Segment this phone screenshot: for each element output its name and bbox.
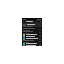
button[interactable] [22,40,42,43]
button[interactable] [22,38,42,40]
button[interactable]: Menu [22,20,42,23]
button[interactable] [22,31,42,34]
button[interactable] [22,28,42,31]
button[interactable] [22,34,42,36]
button[interactable] [22,36,42,38]
button[interactable] [22,45,42,46]
button[interactable] [22,23,42,27]
button[interactable] [22,43,42,45]
